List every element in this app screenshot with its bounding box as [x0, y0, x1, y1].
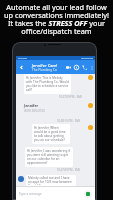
staticText: 10:27:09 PM - SMS [57, 168, 81, 172]
staticText: Hi Jennifer, When would be a good time t… [34, 126, 68, 142]
button[interactable]: Call [81, 64, 87, 70]
staticText: 10:27:09 PM - SMS [59, 95, 83, 99]
button[interactable]: Send [84, 190, 92, 198]
staticText: Jennifer [24, 103, 39, 108]
staticText: (615) 555-0133 [24, 109, 45, 113]
staticText: Hi Jennifer, This is Melody with The Plu… [26, 76, 69, 92]
button[interactable]: Hi Jennifer, This is Melody with The Plu… [26, 76, 69, 92]
button[interactable]: Video call [65, 64, 71, 70]
staticText: Type a message [19, 192, 42, 196]
staticText: The Plumbing Co [32, 68, 57, 72]
button[interactable]: Contact info [73, 64, 79, 70]
staticText: Hi Jennifer, I was wondering if you were… [27, 149, 71, 165]
button[interactable]: Hi Jennifer, When would be a good time t… [34, 126, 68, 142]
button[interactable]: Back [18, 64, 25, 71]
staticText: 10:28:15 PM - SMS [57, 119, 81, 123]
staticText: Automate all your lead follow up convers… [0, 2, 113, 37]
button[interactable]: More options [89, 65, 94, 70]
button[interactable]: Melody called too and I have an appt for… [28, 176, 74, 185]
staticText: Melody called too and I have an appt for… [28, 176, 74, 185]
button[interactable]: Hi Jennifer, I was wondering if you were… [27, 149, 71, 165]
button[interactable]: Back [16, 60, 95, 74]
staticText: Jennifer Carel [32, 63, 58, 68]
